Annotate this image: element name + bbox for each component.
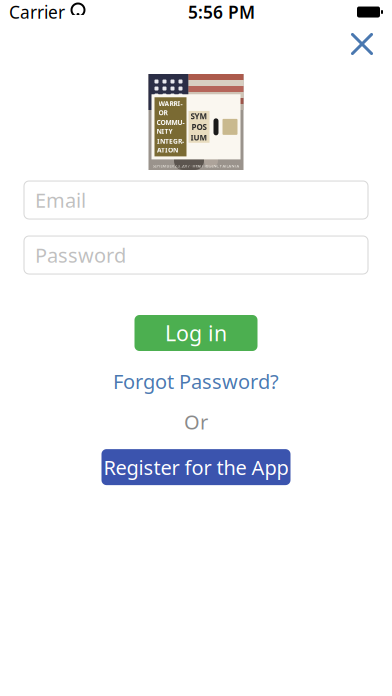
button[interactable]: Log in bbox=[134, 315, 257, 351]
staticText: Carrier bbox=[9, 0, 65, 23]
staticText: SEPTEMBER 2-3, 2017 · HYATT REGENCY ATLA… bbox=[152, 163, 239, 169]
staticText: Email bbox=[35, 187, 86, 213]
staticText: Forgot Password? bbox=[113, 368, 279, 395]
staticText: Log in bbox=[165, 319, 227, 347]
staticText: WARRIOR bbox=[158, 99, 182, 117]
staticText: COMMUNITY bbox=[156, 118, 184, 136]
staticText: POS bbox=[191, 121, 206, 132]
staticText: IUM bbox=[190, 132, 207, 143]
staticText: SYM bbox=[190, 111, 207, 121]
button[interactable]: Forgot Password? bbox=[103, 363, 289, 400]
staticText: Register for the App bbox=[103, 454, 288, 480]
button[interactable]: Close bbox=[340, 24, 384, 64]
staticText: Password bbox=[35, 242, 126, 268]
staticText: INTEGRATION bbox=[157, 137, 184, 154]
staticText: Or bbox=[184, 409, 208, 435]
staticText: 5:56 PM bbox=[188, 0, 255, 23]
button[interactable]: Register for the App bbox=[101, 449, 290, 485]
